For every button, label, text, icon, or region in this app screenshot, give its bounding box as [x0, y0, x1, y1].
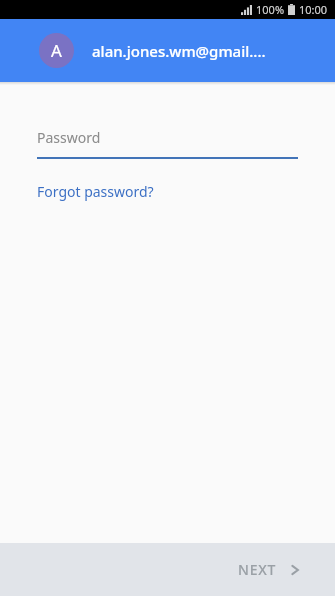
staticText: alan.jones.wm@gmail....	[92, 41, 266, 61]
button[interactable]: Password	[37, 126, 298, 159]
staticText: 100%	[256, 2, 285, 17]
button[interactable]: Forgot password?	[37, 182, 154, 201]
button[interactable]: NEXT	[228, 552, 311, 587]
other: Next	[289, 564, 301, 576]
staticText: Forgot password?	[37, 182, 154, 201]
staticText: 10:00	[299, 2, 328, 17]
staticText: Password	[37, 128, 101, 147]
staticText: A	[51, 39, 62, 62]
staticText: NEXT	[238, 560, 277, 579]
button[interactable]: A	[0, 19, 335, 82]
